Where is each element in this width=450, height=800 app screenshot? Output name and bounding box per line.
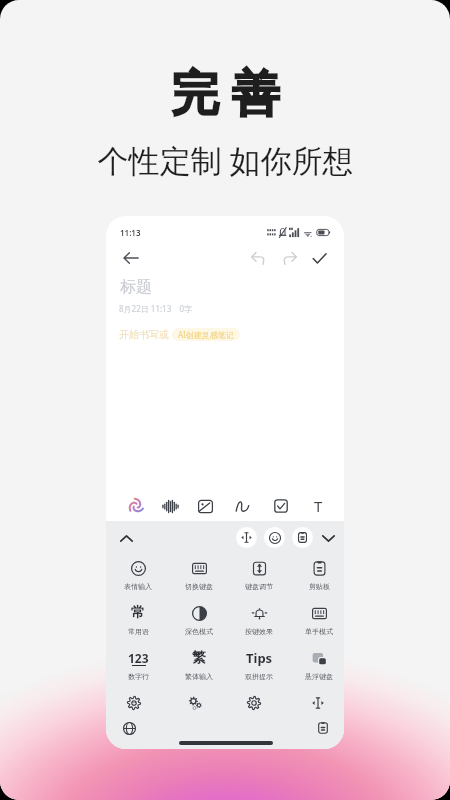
staticText: 开始书写或	[119, 328, 169, 341]
button[interactable]: 123	[111, 648, 165, 681]
button[interactable]: 切换键盘	[172, 558, 226, 591]
staticText: T	[314, 496, 323, 516]
staticText: 8月22日 11:13 0字	[119, 303, 193, 314]
staticText: 切换键盘	[185, 582, 213, 591]
staticText: 悬浮键盘	[305, 672, 333, 681]
button[interactable]: 悬浮键盘	[292, 648, 344, 681]
button[interactable]: 按键效果	[232, 603, 286, 636]
staticText: 完 善	[171, 59, 280, 125]
button[interactable]: 深色模式	[172, 603, 226, 636]
button[interactable]: Resize keyboard	[306, 691, 330, 715]
button[interactable]: Emoji settings	[122, 691, 146, 715]
button[interactable]: Undo	[247, 247, 269, 269]
button[interactable]: Done	[308, 247, 330, 269]
button[interactable]: Checklist	[268, 493, 294, 519]
staticText: 双拼提示	[245, 672, 273, 681]
button[interactable]: Plugins	[183, 691, 207, 715]
button[interactable]: 常	[111, 603, 165, 636]
staticText: Tips	[246, 649, 273, 667]
staticText: 个性定制 如你所想	[97, 139, 354, 181]
button[interactable]: AI assistant	[123, 493, 149, 519]
staticText: 标题	[120, 277, 152, 297]
button[interactable]: Tips	[232, 648, 286, 681]
staticText: 常用语	[128, 627, 149, 636]
button[interactable]: Language	[118, 717, 140, 739]
staticText: 11:13	[120, 227, 141, 238]
button[interactable]: 剪贴板	[292, 558, 344, 591]
button[interactable]: Clipboard history	[312, 717, 334, 739]
staticText: AI创建灵感笔记	[178, 329, 234, 340]
button[interactable]: Redo	[279, 247, 301, 269]
staticText: 表情输入	[124, 582, 152, 591]
button[interactable]: 繁	[172, 648, 226, 681]
staticText: 123	[128, 650, 149, 666]
button[interactable]: Collapse	[115, 527, 137, 549]
staticText: 数字行	[128, 672, 149, 681]
button[interactable]: Text style	[305, 493, 331, 519]
staticText: 键盘调节	[245, 582, 273, 591]
staticText: 剪贴板	[309, 582, 330, 591]
button[interactable]: Back	[120, 247, 142, 269]
button[interactable]: Settings	[242, 691, 266, 715]
button[interactable]: Cursor move	[236, 527, 257, 548]
button[interactable]: Hide keyboard	[317, 527, 339, 549]
button[interactable]: Emoji	[264, 527, 285, 548]
button[interactable]: 表情输入	[111, 558, 165, 591]
button[interactable]: Voice	[157, 493, 183, 519]
button[interactable]: AI创建灵感笔记	[172, 328, 240, 341]
button[interactable]: 键盘调节	[232, 558, 286, 591]
button[interactable]: Clipboard	[292, 527, 313, 548]
button[interactable]: 单手模式	[292, 603, 344, 636]
staticText: 繁	[192, 649, 206, 667]
staticText: 繁体输入	[185, 672, 213, 681]
button[interactable]: Handwriting	[229, 493, 255, 519]
staticText: 单手模式	[305, 627, 333, 636]
staticText: 深色模式	[185, 627, 213, 636]
staticText: 常	[131, 604, 145, 622]
staticText: 按键效果	[245, 627, 273, 636]
button[interactable]: Insert image	[192, 493, 218, 519]
